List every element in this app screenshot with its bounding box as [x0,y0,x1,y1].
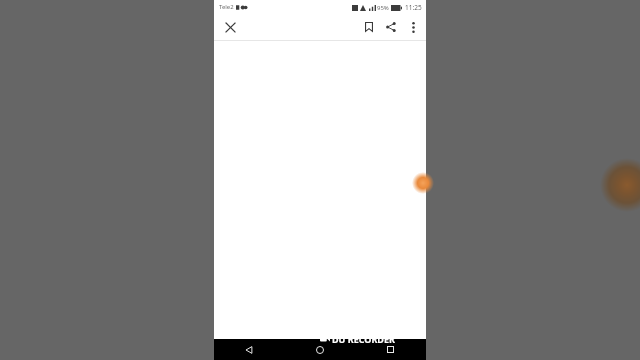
staticText: 95% [377,4,389,12]
button[interactable]: Share [380,16,402,38]
button[interactable]: More options [402,16,424,38]
staticText: 11:25 [405,3,422,12]
button[interactable]: Home [284,339,355,360]
staticText: Tele2 [219,3,234,11]
button[interactable]: Close [219,16,241,38]
button[interactable]: Back [214,339,284,360]
button[interactable]: Bookmark [358,16,380,38]
button[interactable]: Recent apps [355,339,426,360]
staticText: DU RECORDER [332,333,395,345]
